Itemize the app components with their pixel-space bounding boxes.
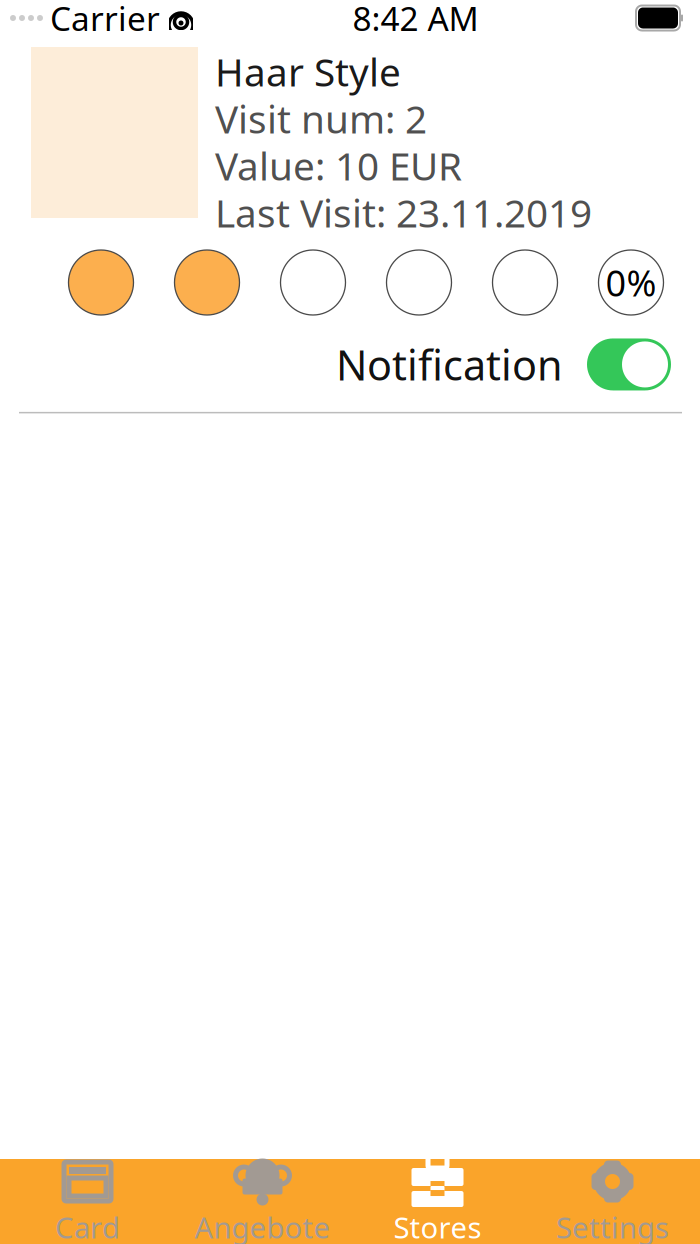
staticText: Settings [556,1207,669,1244]
button[interactable]: 0% [598,250,663,315]
button[interactable]: Stores [350,1150,525,1244]
staticText: Angebote [194,1207,330,1244]
staticText: Haar Style [215,46,401,97]
staticText: Stores [393,1207,481,1244]
button[interactable]: Stamp collected [174,250,239,315]
staticText: Carrier [50,0,160,40]
button[interactable]: Stamp empty [492,250,557,315]
staticText: 0% [605,259,656,306]
staticText: Notification [336,337,563,392]
button[interactable]: Angebote [175,1150,350,1244]
button[interactable]: Card [0,1150,175,1244]
staticText: Visit num: 2 [215,93,427,144]
staticText: 8:42 AM [352,0,478,40]
button[interactable]: Stamp empty [280,250,345,315]
staticText: Card [55,1207,120,1244]
staticText: Value: 10 EUR [215,140,462,191]
staticText: Last Visit: 23.11.2019 [215,187,592,238]
button[interactable]: Stamp collected [68,250,133,315]
button[interactable]: Stamp empty [386,250,451,315]
button[interactable]: Notification toggle, on [587,338,671,390]
button[interactable]: Settings [525,1150,700,1244]
